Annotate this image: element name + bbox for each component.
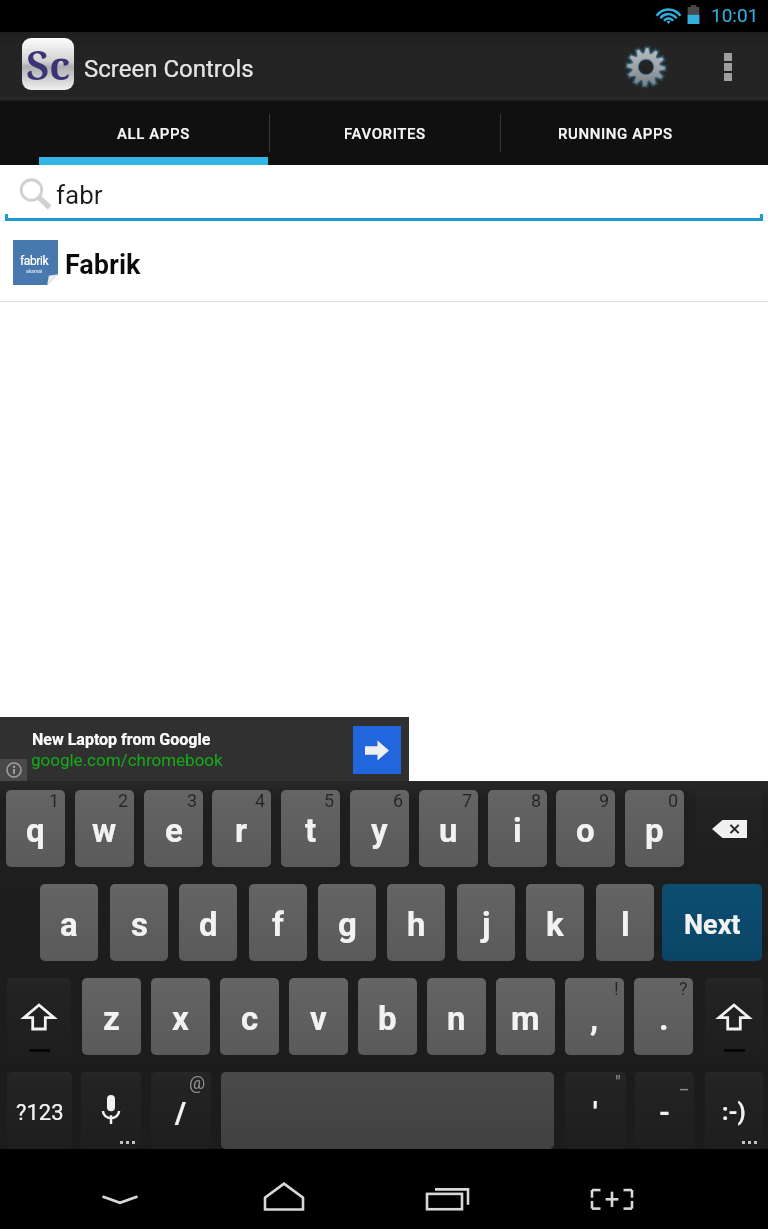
button[interactable]: z bbox=[82, 978, 141, 1055]
staticText: r bbox=[235, 811, 248, 850]
staticText: a bbox=[60, 905, 78, 944]
staticText: _ bbox=[680, 1072, 689, 1093]
button[interactable]: p bbox=[625, 790, 684, 867]
button[interactable]: Next bbox=[662, 884, 762, 961]
staticText: FAVORITES bbox=[344, 125, 426, 143]
button[interactable]: RUNNING APPS bbox=[500, 101, 731, 165]
staticText: 3 bbox=[187, 790, 198, 811]
staticText: ! bbox=[614, 978, 619, 999]
staticText: o bbox=[576, 811, 595, 850]
button[interactable]: h bbox=[387, 884, 445, 961]
staticText: l bbox=[621, 905, 630, 944]
staticText: y bbox=[371, 811, 388, 850]
button[interactable]: Settings bbox=[598, 32, 693, 101]
staticText: @ bbox=[189, 1072, 206, 1093]
staticText: u bbox=[439, 811, 458, 850]
staticText: c bbox=[241, 999, 259, 1038]
button[interactable]: fabrik bbox=[0, 225, 768, 301]
staticText: ALL APPS bbox=[117, 125, 190, 143]
button[interactable]: c bbox=[220, 978, 279, 1055]
button[interactable]: x bbox=[151, 978, 210, 1055]
button[interactable]: - bbox=[635, 1072, 694, 1149]
staticText: g bbox=[338, 905, 357, 944]
button[interactable]: Hide keyboard bbox=[70, 1149, 170, 1229]
staticText: d bbox=[199, 905, 218, 944]
button[interactable]: Shift bbox=[705, 978, 763, 1055]
staticText: fabrik bbox=[20, 254, 49, 268]
staticText: ' bbox=[593, 1096, 598, 1129]
staticText: :-) bbox=[722, 1099, 746, 1126]
button[interactable]: n bbox=[427, 978, 486, 1055]
button[interactable]: Backspace bbox=[696, 790, 762, 867]
staticText: ?123 bbox=[16, 1100, 64, 1126]
button[interactable]: t bbox=[281, 790, 340, 867]
staticText: f bbox=[272, 905, 284, 944]
staticText: - bbox=[659, 1096, 671, 1129]
button[interactable]: u bbox=[419, 790, 478, 867]
staticText: 1 bbox=[49, 790, 60, 811]
staticText: 9 bbox=[599, 790, 610, 811]
button[interactable]: e bbox=[144, 790, 203, 867]
staticText: m bbox=[511, 999, 540, 1038]
button[interactable]: Recent apps bbox=[398, 1149, 498, 1229]
staticText: New Laptop from Google bbox=[32, 730, 211, 749]
staticText: 8 bbox=[531, 790, 542, 811]
button[interactable]: . bbox=[634, 978, 693, 1055]
button[interactable]: Screenshot bbox=[562, 1149, 662, 1229]
button[interactable]: y bbox=[350, 790, 409, 867]
button[interactable]: b bbox=[358, 978, 417, 1055]
button[interactable]: k bbox=[526, 884, 584, 961]
button[interactable]: ?123 bbox=[7, 1072, 72, 1149]
button[interactable]: More options bbox=[695, 32, 761, 101]
button[interactable]: ALL APPS bbox=[38, 101, 269, 165]
button[interactable]: :-) bbox=[705, 1072, 763, 1149]
staticText: w bbox=[92, 811, 117, 850]
staticText: e bbox=[165, 811, 183, 850]
button[interactable]: Open ad bbox=[353, 726, 401, 774]
staticText: " bbox=[615, 1072, 621, 1093]
staticText: Sc bbox=[26, 38, 71, 89]
button[interactable]: r bbox=[212, 790, 271, 867]
button[interactable]: l bbox=[596, 884, 654, 961]
button[interactable]: , bbox=[565, 978, 624, 1055]
staticText: google.com/chromebook bbox=[31, 750, 223, 770]
button[interactable]: d bbox=[179, 884, 237, 961]
button[interactable]: q bbox=[6, 790, 65, 867]
button[interactable]: i bbox=[488, 790, 547, 867]
button[interactable]: New Laptop from Google bbox=[0, 717, 409, 781]
button[interactable]: FAVORITES bbox=[269, 101, 500, 165]
button[interactable]: Home bbox=[234, 1149, 334, 1229]
staticText: 0 bbox=[668, 790, 679, 811]
staticText: h bbox=[407, 905, 426, 944]
staticText: z bbox=[103, 999, 120, 1038]
button[interactable]: a bbox=[40, 884, 98, 961]
staticText: i bbox=[513, 811, 522, 850]
staticText: Next bbox=[684, 909, 741, 941]
staticText: b bbox=[378, 999, 397, 1038]
button[interactable]: g bbox=[318, 884, 376, 961]
staticText: akamai bbox=[26, 268, 43, 274]
button[interactable]: fabr bbox=[0, 165, 768, 222]
staticText: . bbox=[659, 999, 669, 1038]
button[interactable]: Shift bbox=[7, 978, 71, 1055]
staticText: 5 bbox=[324, 790, 335, 811]
staticText: x bbox=[172, 999, 189, 1038]
staticText: , bbox=[590, 999, 599, 1038]
staticText: 6 bbox=[393, 790, 404, 811]
button[interactable]: ' bbox=[565, 1072, 626, 1149]
button[interactable]: Voice input bbox=[81, 1072, 141, 1149]
staticText: s bbox=[131, 905, 148, 944]
button[interactable]: m bbox=[496, 978, 555, 1055]
button[interactable]: j bbox=[457, 884, 515, 961]
staticText: ? bbox=[679, 978, 688, 999]
staticText: fabr bbox=[56, 180, 103, 210]
button[interactable]: w bbox=[75, 790, 134, 867]
button[interactable]: f bbox=[249, 884, 307, 961]
button[interactable]: v bbox=[289, 978, 348, 1055]
button[interactable]: / bbox=[151, 1072, 211, 1149]
button[interactable]: o bbox=[556, 790, 615, 867]
staticText: 4 bbox=[255, 790, 266, 811]
staticText: 7 bbox=[462, 790, 473, 811]
button[interactable]: s bbox=[110, 884, 168, 961]
